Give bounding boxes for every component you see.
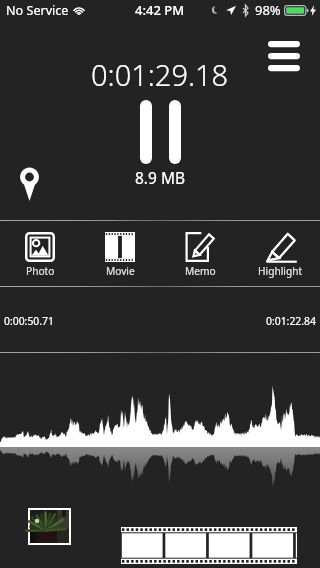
staticText: 0:01:22.84	[266, 314, 316, 328]
staticText: 0:01:29.18	[91, 55, 229, 94]
staticText: Photo	[26, 264, 55, 278]
staticText: Highlight	[258, 264, 303, 278]
staticText: Memo	[185, 264, 216, 278]
staticText: 8.9 MB	[135, 167, 186, 188]
staticText: 98%	[255, 1, 281, 19]
button[interactable]: Photo	[0, 221, 80, 286]
button[interactable]: Memo	[160, 221, 240, 286]
button[interactable]: Pause	[140, 100, 181, 164]
button[interactable]: Photo thumbnail	[30, 510, 69, 543]
staticText: No Service	[6, 2, 69, 19]
button[interactable]: Movie	[80, 221, 160, 286]
staticText: 0:00:50.71	[4, 314, 54, 328]
staticText: Movie	[106, 264, 135, 278]
button[interactable]: Film strip	[121, 527, 297, 564]
button[interactable]: Location	[18, 165, 42, 203]
button[interactable]: Highlight	[240, 221, 320, 286]
staticText: 4:42 PM	[135, 1, 185, 19]
button[interactable]: Menu	[264, 36, 304, 75]
